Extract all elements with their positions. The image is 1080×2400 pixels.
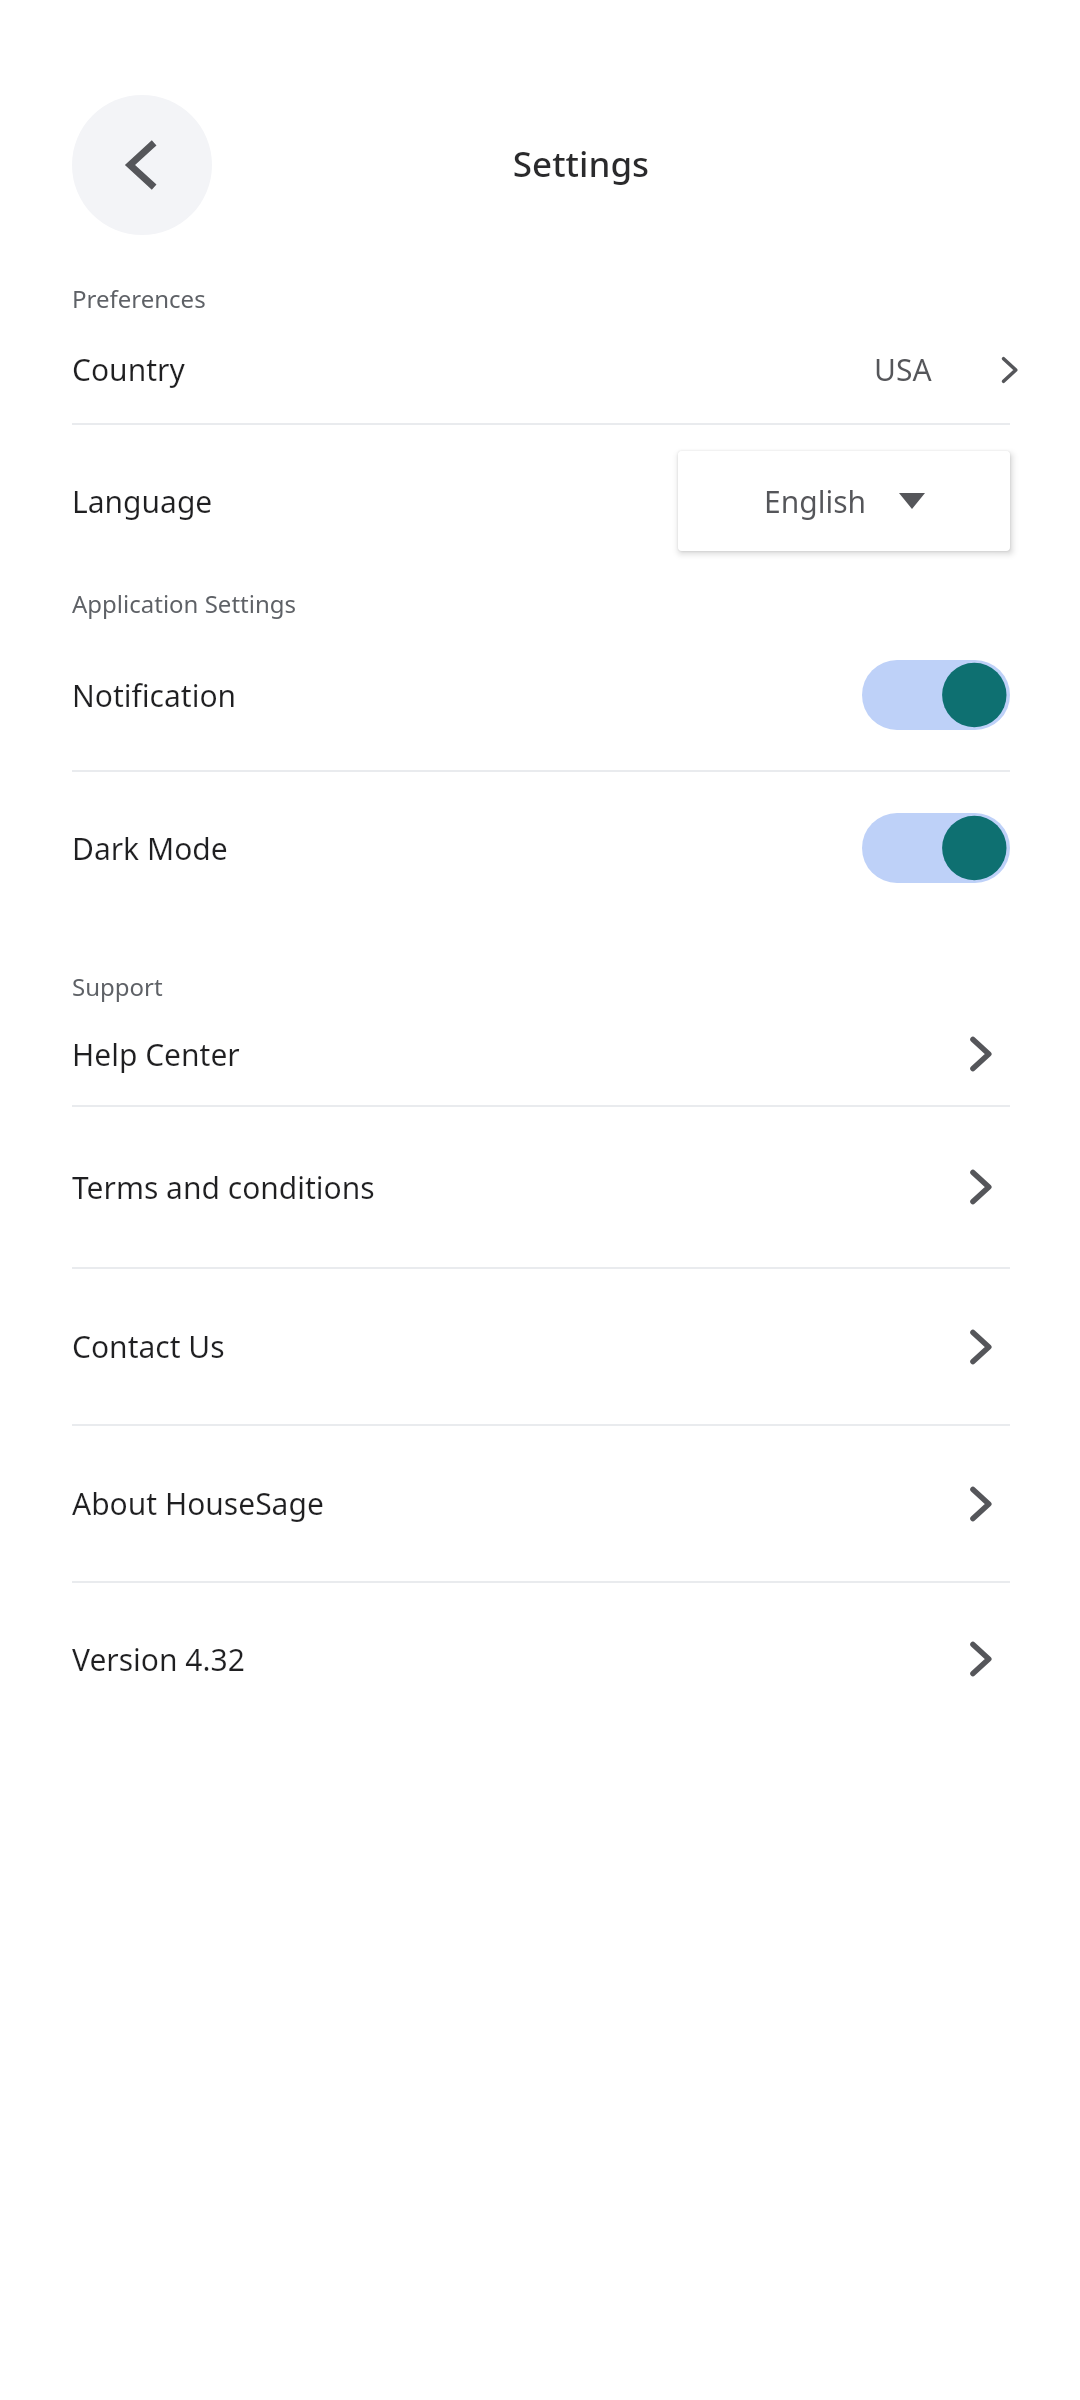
staticText: English — [764, 481, 867, 522]
staticText: Support — [72, 970, 163, 1003]
button[interactable]: About HouseSage — [0, 1426, 1080, 1581]
staticText: Version 4.32 — [72, 1639, 245, 1680]
button[interactable]: Back — [72, 95, 212, 235]
button[interactable]: Toggle on — [862, 660, 1010, 730]
button[interactable]: Contact Us — [0, 1269, 1080, 1424]
button[interactable]: Terms and conditions — [0, 1107, 1080, 1267]
staticText: USA — [874, 349, 932, 390]
button[interactable]: Country — [0, 315, 1080, 423]
staticText: Notification — [72, 675, 237, 716]
button[interactable]: Notification — [0, 620, 1080, 770]
staticText: Settings — [212, 140, 950, 188]
button[interactable]: English — [678, 451, 1010, 551]
button[interactable]: Dark Mode — [0, 772, 1080, 924]
staticText: Application Settings — [72, 587, 296, 620]
staticText: Language — [72, 481, 213, 522]
staticText: Country — [72, 349, 185, 390]
staticText: Terms and conditions — [72, 1167, 375, 1208]
staticText: Preferences — [72, 282, 206, 315]
button[interactable]: Toggle on — [862, 813, 1010, 883]
staticText: Dark Mode — [72, 828, 228, 869]
button[interactable]: Version 4.32 — [0, 1583, 1080, 1735]
staticText: Contact Us — [72, 1326, 225, 1367]
staticText: Help Center — [72, 1034, 240, 1075]
button[interactable]: Help Center — [0, 1003, 1080, 1105]
staticText: About HouseSage — [72, 1483, 324, 1524]
